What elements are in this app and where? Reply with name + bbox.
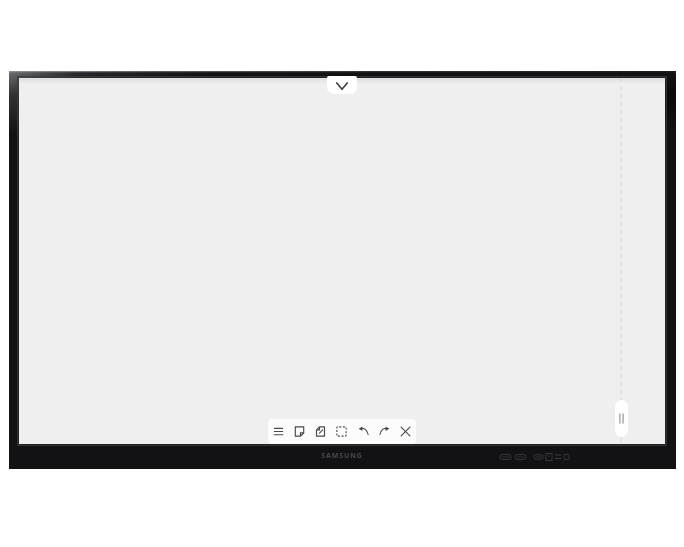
- staticText: SAMSUNG: [321, 451, 363, 461]
- button[interactable]: Undo: [353, 419, 374, 444]
- button[interactable]: Resize page divider: [615, 400, 628, 437]
- button[interactable]: Select area: [331, 419, 352, 444]
- button[interactable]: Edit note: [310, 419, 331, 444]
- button[interactable]: Menu: [268, 419, 289, 444]
- button[interactable]: Redo: [374, 419, 395, 444]
- button[interactable]: New note: [289, 419, 310, 444]
- button[interactable]: Close: [395, 419, 416, 444]
- button[interactable]: Open menu: [327, 76, 357, 94]
